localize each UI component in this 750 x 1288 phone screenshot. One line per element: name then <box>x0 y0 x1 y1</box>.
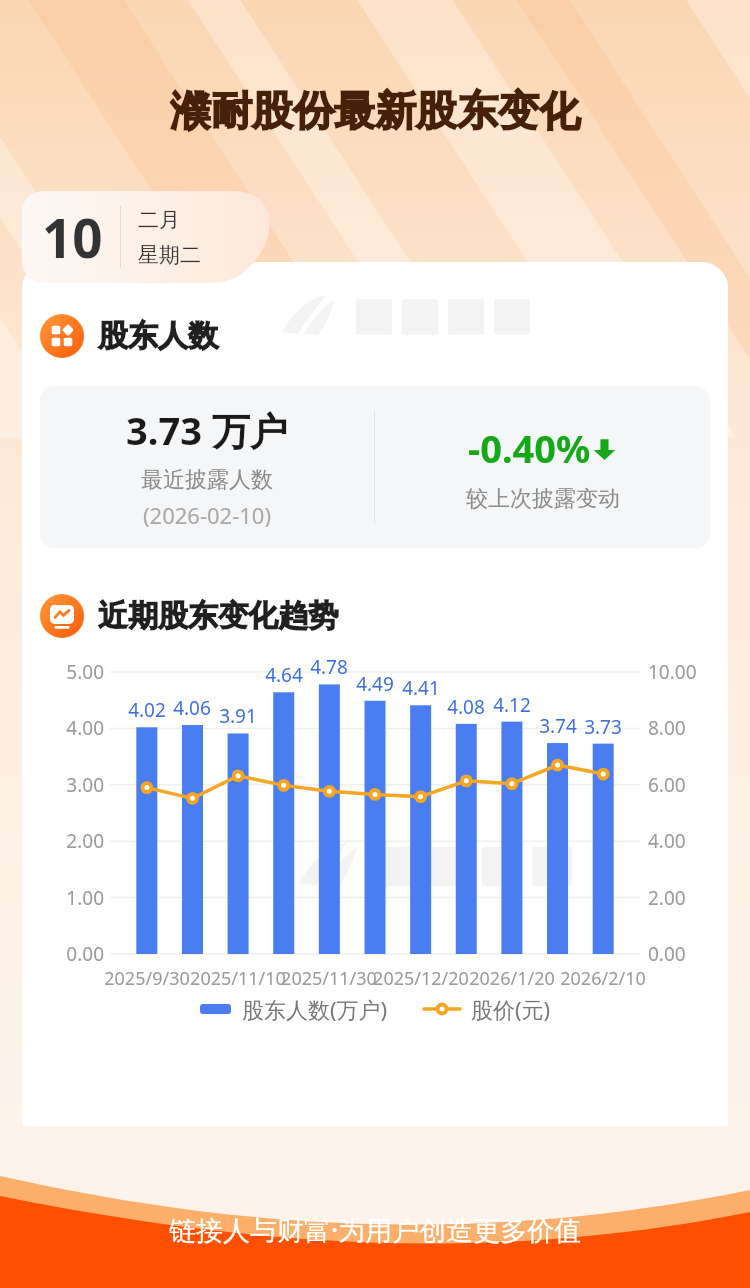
staticText: 2025/9/30 <box>83 966 211 991</box>
staticText: 3.74 <box>530 713 586 739</box>
staticText: 股东人数(万户) <box>242 994 388 1024</box>
staticText: 4.00 <box>648 828 686 854</box>
staticText: 4.02 <box>119 697 175 723</box>
staticText: 4.06 <box>164 695 220 721</box>
staticText: 3.91 <box>210 703 266 729</box>
staticText: 链接人与财富·为用户创造更多价值 <box>169 1211 582 1248</box>
staticText: 4.78 <box>301 654 357 680</box>
staticText: 10.00 <box>648 659 697 685</box>
staticText: 0.00 <box>26 941 104 967</box>
staticText: 3.73 <box>575 714 631 740</box>
staticText: 8.00 <box>648 715 686 741</box>
button[interactable]: 股东人数 <box>40 314 728 358</box>
staticText: (2026-02-10) <box>143 500 272 530</box>
staticText: 4.49 <box>347 671 403 697</box>
staticText: 4.41 <box>393 675 449 701</box>
staticText: 最近披露人数 <box>141 466 273 494</box>
staticText: 6.00 <box>648 772 686 798</box>
staticText: 股东人数 <box>98 317 218 355</box>
staticText: 2025/12/20 <box>357 966 485 991</box>
staticText: 3.73 万户 <box>126 404 288 456</box>
staticText: 二月 <box>138 207 180 233</box>
other: Decrease <box>591 435 618 462</box>
staticText: 近期股东变化趋势 <box>98 597 338 635</box>
staticText: 星期二 <box>138 242 201 268</box>
staticText: 2026/2/10 <box>539 966 667 991</box>
staticText: 10 <box>42 201 103 273</box>
staticText: 5.00 <box>26 659 104 685</box>
staticText: 1.00 <box>26 885 104 911</box>
button[interactable]: 3.73 万户 <box>40 386 710 548</box>
staticText: 2.00 <box>26 828 104 854</box>
staticText: 2025/11/30 <box>265 966 393 991</box>
staticText: 4.12 <box>484 692 540 718</box>
staticText: 2.00 <box>648 885 686 911</box>
staticText: 股价(元) <box>471 994 551 1024</box>
staticText: 3.00 <box>26 772 104 798</box>
staticText: 2026/1/20 <box>448 966 576 991</box>
staticText: 4.64 <box>256 662 312 688</box>
staticText: 2025/11/10 <box>174 966 302 991</box>
staticText: 0.00 <box>648 941 686 967</box>
staticText: 濮耐股份最新股东变化 <box>170 86 580 138</box>
staticText: 4.08 <box>438 694 494 720</box>
staticText: -0.40% <box>468 422 591 474</box>
button[interactable]: 近期股东变化趋势 <box>40 594 728 638</box>
staticText: 较上次披露变动 <box>466 485 620 513</box>
staticText: 4.00 <box>26 715 104 741</box>
